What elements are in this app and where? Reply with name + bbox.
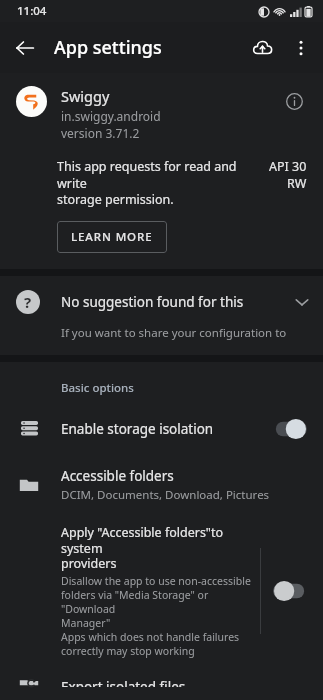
staticText: Swiggy [61, 86, 110, 106]
staticText: Export isolated files [61, 678, 186, 687]
staticText: This app requests for read and write sto… [57, 158, 269, 207]
staticText: in.swiggy.android [61, 108, 161, 124]
staticText: App settings [54, 35, 162, 60]
button[interactable]: Toggle on [269, 418, 307, 440]
staticText: No suggestion found for this applica… [61, 293, 287, 311]
button[interactable]: Accessible folders [0, 454, 323, 516]
button[interactable]: Export isolated files [0, 666, 323, 700]
button[interactable]: Apply "Accessible folders"to system prov… [0, 516, 323, 666]
staticText: Accessible folders [61, 467, 174, 485]
staticText: version 3.71.2 [61, 125, 140, 141]
staticText: Basic options [61, 380, 134, 396]
button[interactable]: Backup to cloud [242, 28, 282, 68]
button[interactable]: Enable storage isolation [0, 404, 323, 454]
staticText: DCIM, Documents, Download, Pictures [61, 487, 270, 503]
staticText: 11:04 [17, 3, 47, 19]
staticText: ? [24, 292, 32, 312]
button[interactable]: More options [282, 29, 320, 67]
staticText: Apply "Accessible folders"to system prov… [61, 524, 252, 571]
button[interactable]: Back [5, 28, 45, 68]
staticText: RW [287, 175, 307, 192]
button[interactable]: Toggle off [273, 580, 311, 602]
staticText: Disallow the app to use non-accessible f… [61, 574, 252, 658]
button[interactable]: ? [0, 276, 323, 355]
staticText: LEARN MORE [71, 229, 153, 245]
staticText: Enable storage isolation [61, 420, 269, 438]
staticText: If you want to share your configuration … [61, 325, 315, 341]
staticText: API 30 [269, 158, 307, 175]
button[interactable]: App info [279, 86, 309, 116]
button[interactable]: LEARN MORE [57, 221, 167, 253]
